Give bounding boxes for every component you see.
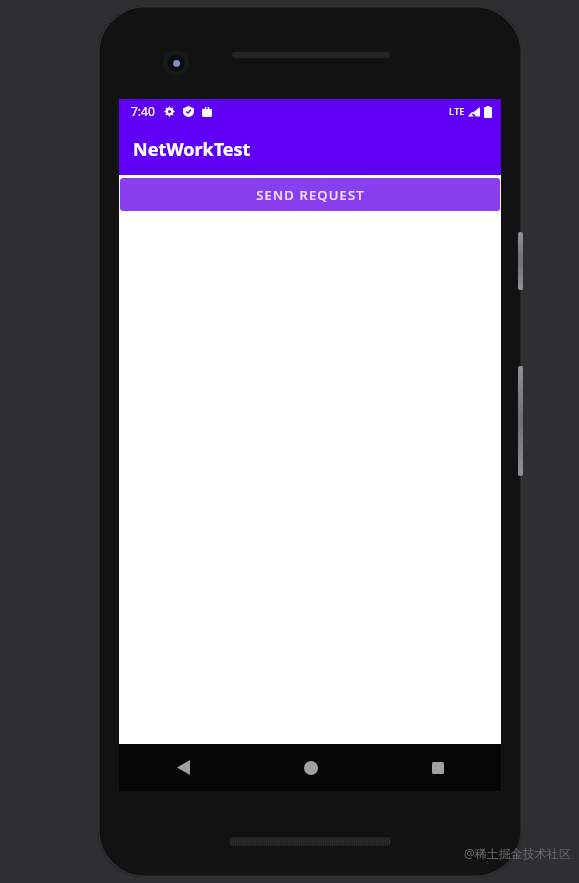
- staticText: @稀土掘金技术社区: [464, 845, 571, 861]
- button[interactable]: Recent apps: [374, 744, 501, 791]
- staticText: 7:40: [131, 103, 155, 119]
- staticText: SEND REQUEST: [256, 186, 365, 204]
- staticText: LTE: [449, 105, 465, 118]
- staticText: NetWorkTest: [133, 137, 251, 162]
- button[interactable]: SEND REQUEST: [120, 178, 500, 211]
- button[interactable]: Back: [119, 744, 247, 791]
- button[interactable]: Home: [247, 744, 374, 791]
